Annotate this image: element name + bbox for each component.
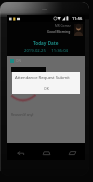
staticText: MR Gomez — [55, 24, 71, 28]
staticText: 11:56 — [72, 16, 83, 21]
button[interactable]: Back — [9, 143, 31, 160]
button[interactable]: Home — [35, 143, 57, 160]
staticText: Reason(if any) — [11, 112, 34, 117]
staticText: Attendance Request Submit — [15, 75, 70, 81]
staticText: Today Date — [33, 40, 59, 46]
button[interactable]: Attendance toggle — [10, 59, 21, 63]
staticText: Good Morning — [47, 29, 71, 34]
button[interactable]: Profile — [74, 24, 83, 35]
button[interactable]: Recent apps — [61, 143, 83, 160]
staticText: ON — [16, 59, 21, 63]
button[interactable]: OK — [42, 85, 51, 92]
staticText: OK — [44, 86, 49, 91]
staticText: 2019-02-25 11:36:04 — [24, 48, 68, 54]
